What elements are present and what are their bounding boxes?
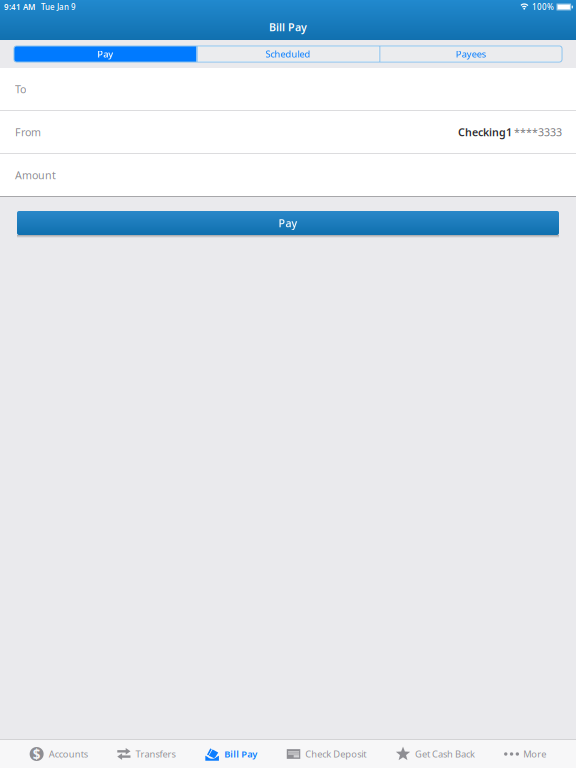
button[interactable]: Pay bbox=[17, 211, 559, 238]
button[interactable]: Payees bbox=[379, 46, 562, 62]
staticText: Bill Pay bbox=[269, 20, 307, 34]
staticText: Check Deposit bbox=[305, 748, 366, 760]
button[interactable]: $ bbox=[30, 740, 88, 768]
staticText: Tue Jan 9 bbox=[41, 2, 76, 12]
staticText: Scheduled bbox=[265, 48, 310, 60]
staticText: From bbox=[15, 125, 41, 139]
staticText: Transfers bbox=[135, 748, 175, 760]
staticText: Pay bbox=[278, 216, 297, 230]
button[interactable]: More bbox=[505, 740, 546, 768]
button[interactable]: Pay bbox=[14, 46, 197, 62]
button[interactable]: From bbox=[0, 111, 576, 153]
button[interactable]: Check Deposit bbox=[287, 740, 366, 768]
staticText: Amount bbox=[15, 168, 56, 182]
staticText: ****3333 bbox=[514, 125, 562, 139]
staticText: $ bbox=[33, 745, 41, 763]
staticText: Pay bbox=[97, 48, 113, 60]
button[interactable]: Amount bbox=[0, 154, 576, 196]
button[interactable]: Scheduled bbox=[197, 46, 379, 62]
button[interactable]: Transfers bbox=[117, 740, 175, 768]
staticText: 9:41 AM bbox=[4, 2, 35, 12]
button[interactable]: Bill Pay bbox=[205, 740, 257, 768]
staticText: Checking1 bbox=[458, 125, 512, 139]
staticText: Get Cash Back bbox=[415, 748, 475, 760]
staticText: Payees bbox=[456, 48, 486, 60]
staticText: Bill Pay bbox=[224, 748, 257, 760]
button[interactable]: Get Cash Back bbox=[396, 740, 475, 768]
staticText: More bbox=[523, 748, 546, 760]
staticText: To bbox=[15, 82, 26, 96]
staticText: 100% bbox=[532, 2, 554, 12]
staticText: Accounts bbox=[49, 748, 88, 760]
